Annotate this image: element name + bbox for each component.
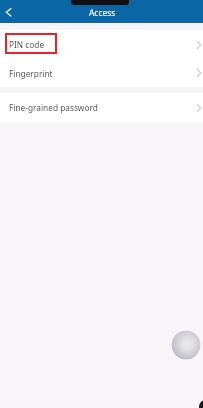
staticText: Fingerprint: [9, 68, 53, 79]
staticText: PIN code: [9, 39, 45, 50]
staticText: Access: [89, 7, 116, 18]
button[interactable]: Assistive touch: [171, 330, 201, 360]
button[interactable]: Fingerprint: [0, 59, 203, 87]
staticText: Fine-grained password: [9, 102, 98, 113]
button[interactable]: PIN code: [0, 30, 203, 59]
button[interactable]: Fine-grained password: [0, 93, 203, 122]
button[interactable]: Back: [0, 1, 18, 23]
